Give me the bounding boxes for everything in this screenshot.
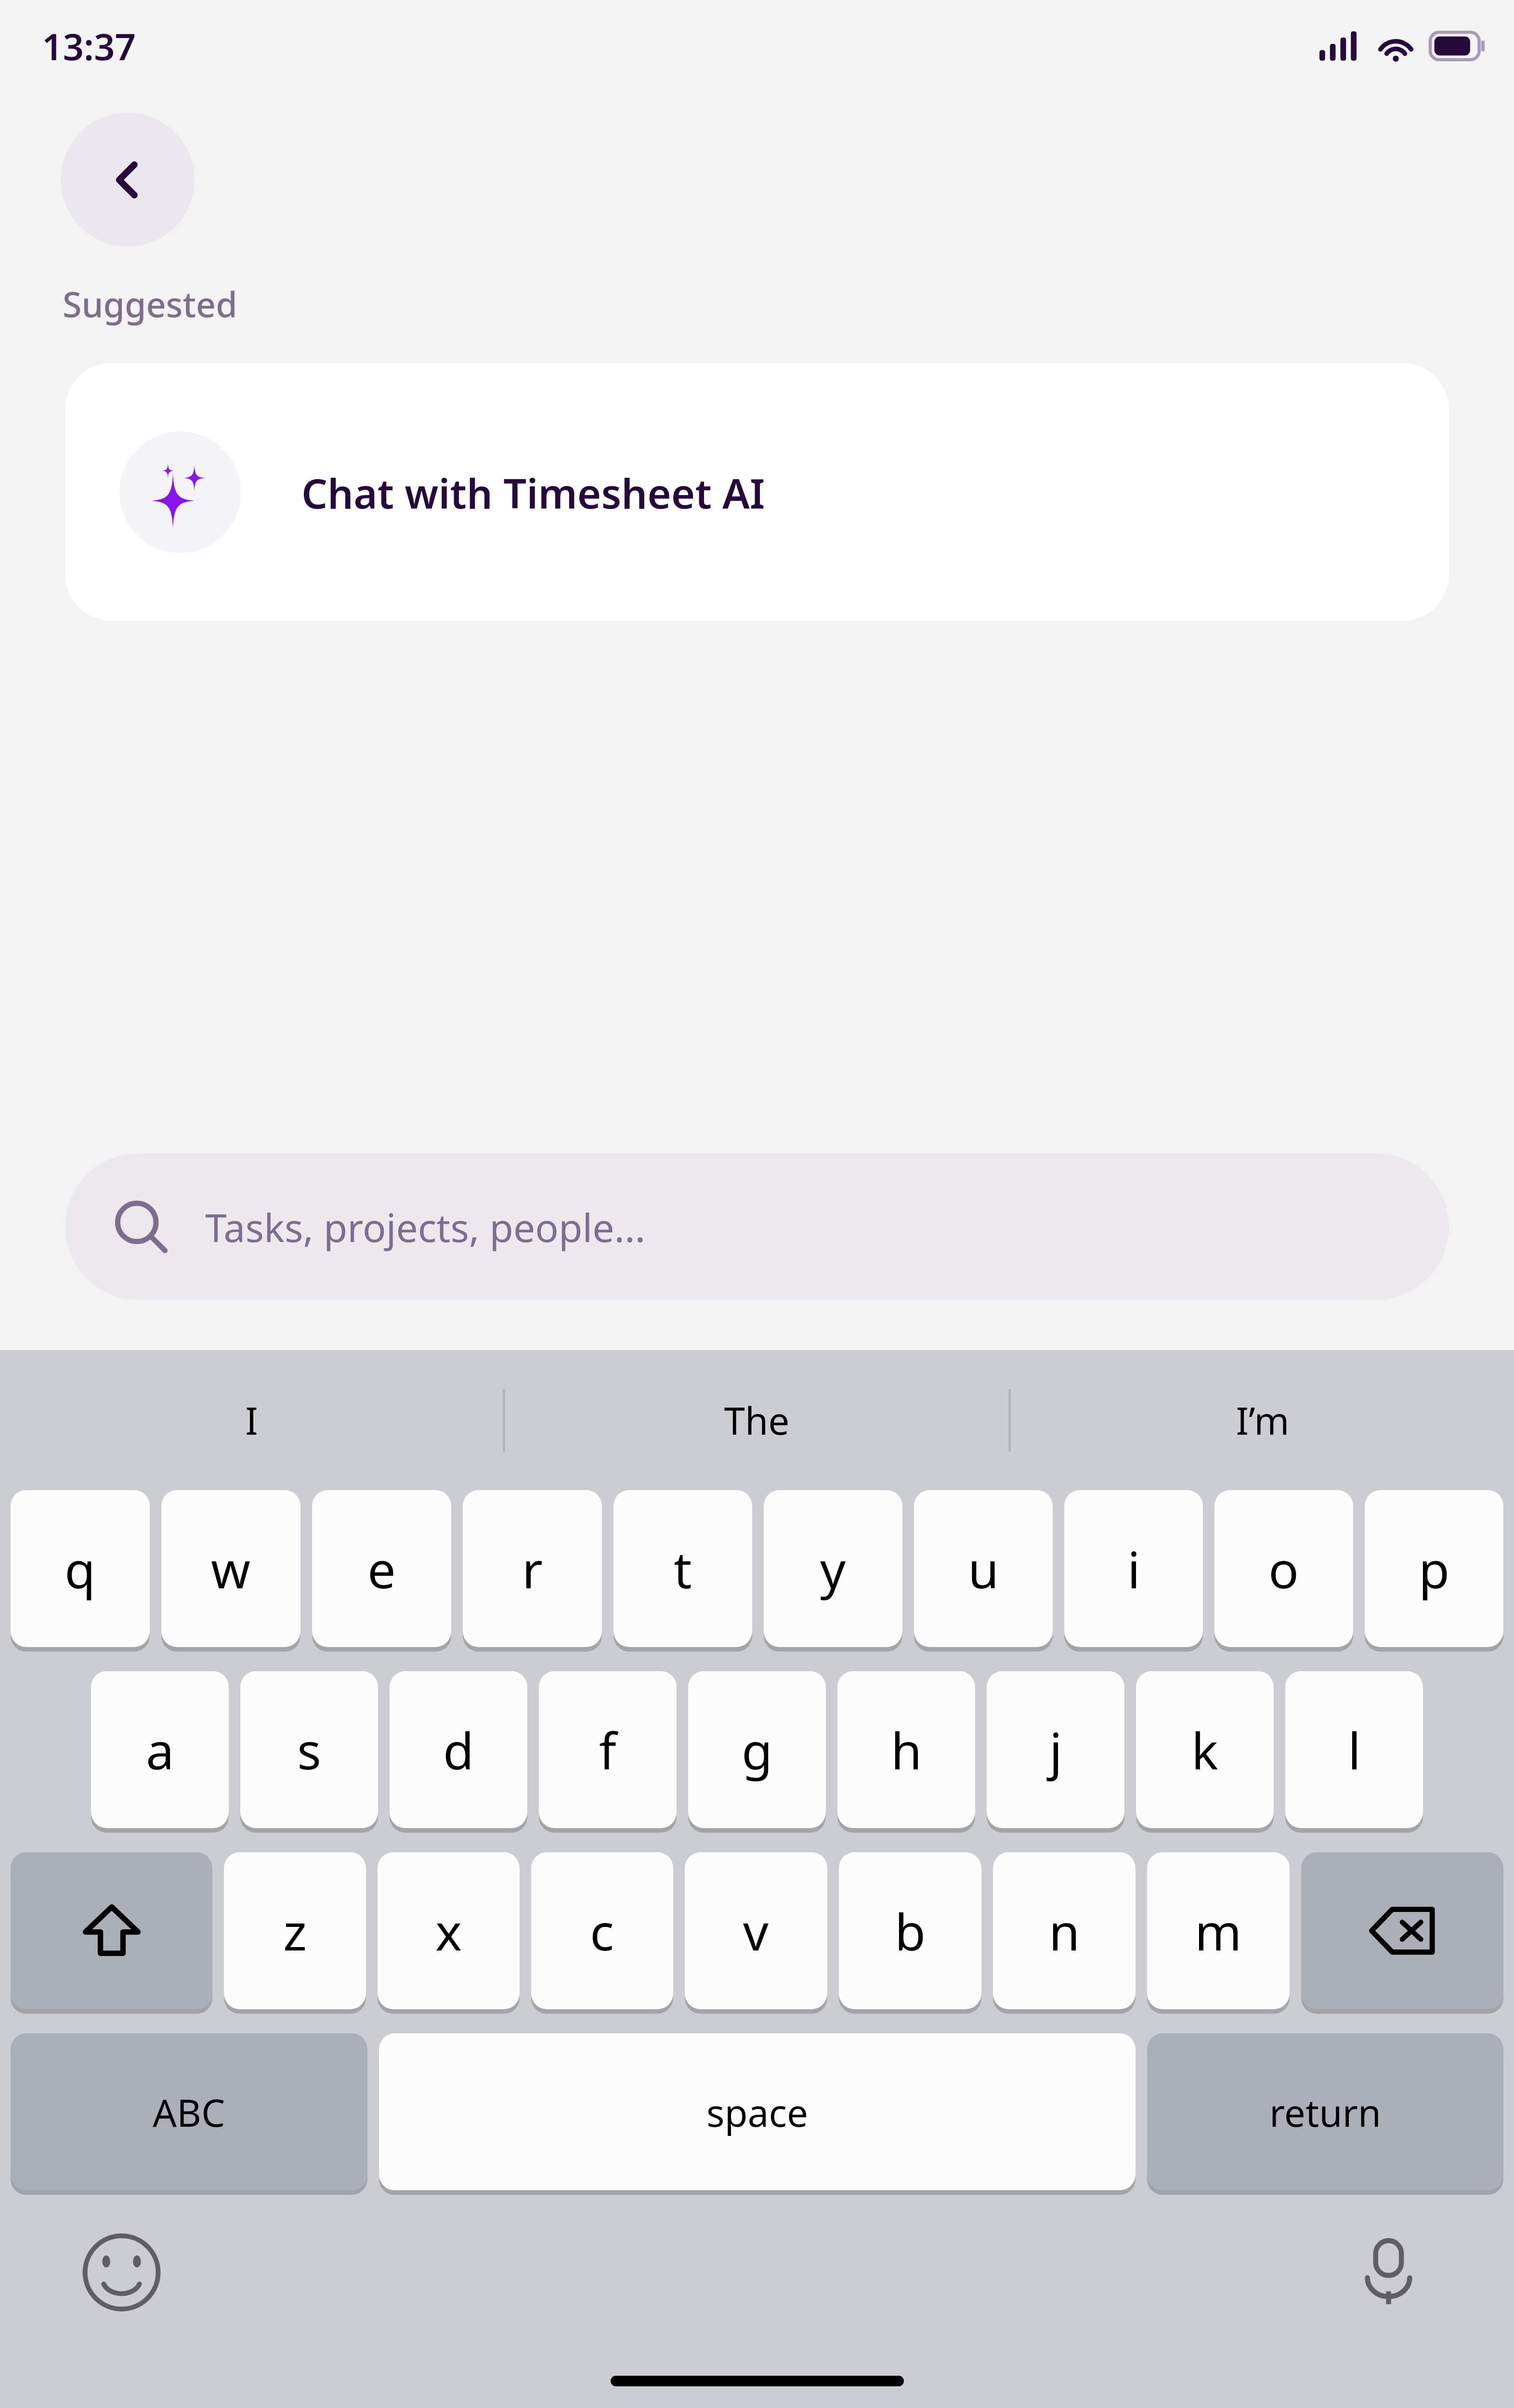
staticText: z (283, 1897, 307, 1965)
button[interactable]: Dictate (1346, 2230, 1430, 2314)
staticText: m (1195, 1897, 1242, 1965)
button[interactable]: f (539, 1671, 677, 1828)
staticText: Chat with Timesheet AI (301, 465, 765, 520)
staticText: space (706, 2086, 809, 2138)
staticText: Suggested (63, 280, 237, 327)
button[interactable]: j (987, 1671, 1124, 1828)
staticText: g (742, 1715, 773, 1784)
button[interactable]: I’m (1011, 1350, 1514, 1490)
staticText: o (1268, 1534, 1299, 1603)
staticText: f (599, 1715, 616, 1784)
staticText: I (245, 1394, 258, 1446)
button[interactable]: v (685, 1852, 827, 2009)
staticText: s (297, 1715, 321, 1784)
staticText: ABC (153, 2086, 225, 2138)
button[interactable]: s (240, 1671, 378, 1828)
button[interactable]: r (463, 1490, 602, 1647)
staticText: v (743, 1897, 769, 1965)
button[interactable]: i (1064, 1490, 1203, 1647)
button[interactable]: b (839, 1852, 981, 2009)
staticText: I’m (1236, 1394, 1290, 1446)
staticText: i (1127, 1534, 1140, 1603)
button[interactable]: o (1214, 1490, 1353, 1647)
button[interactable]: z (224, 1852, 366, 2009)
staticText: t (674, 1534, 692, 1603)
button[interactable]: e (312, 1490, 451, 1647)
staticText: k (1191, 1715, 1218, 1784)
button[interactable]: Backspace (1301, 1852, 1503, 2009)
staticText: j (1049, 1715, 1062, 1784)
button[interactable]: g (688, 1671, 826, 1828)
button[interactable]: Tasks, projects, people... (65, 1153, 1449, 1300)
button[interactable]: return (1147, 2033, 1503, 2190)
staticText: y (820, 1534, 846, 1603)
staticText: r (522, 1534, 543, 1603)
button[interactable]: q (11, 1490, 150, 1647)
button[interactable]: The (505, 1350, 1008, 1490)
staticText: q (65, 1534, 96, 1603)
button[interactable]: k (1136, 1671, 1274, 1828)
button[interactable]: x (378, 1852, 520, 2009)
staticText: d (443, 1715, 474, 1784)
staticText: return (1269, 2086, 1382, 2138)
button[interactable]: Chat with Timesheet AI (65, 363, 1449, 621)
staticText: Tasks, projects, people... (205, 1201, 646, 1254)
button[interactable]: I (0, 1350, 503, 1490)
button[interactable]: ABC (11, 2033, 367, 2190)
button[interactable]: space (379, 2033, 1135, 2190)
staticText: l (1348, 1715, 1361, 1784)
button[interactable]: c (531, 1852, 673, 2009)
staticText: u (968, 1534, 999, 1603)
button[interactable]: a (91, 1671, 229, 1828)
staticText: a (146, 1715, 174, 1784)
staticText: w (211, 1534, 251, 1603)
button[interactable]: Shift (11, 1852, 212, 2009)
button[interactable]: w (161, 1490, 300, 1647)
staticText: e (367, 1534, 396, 1603)
button[interactable]: l (1285, 1671, 1423, 1828)
button[interactable]: d (390, 1671, 527, 1828)
staticText: The (724, 1394, 790, 1446)
button[interactable]: t (613, 1490, 752, 1647)
staticText: b (895, 1897, 926, 1965)
button[interactable]: u (914, 1490, 1053, 1647)
button[interactable]: h (837, 1671, 975, 1828)
staticText: c (590, 1897, 614, 1965)
button[interactable]: Back (61, 113, 195, 247)
button[interactable]: m (1147, 1852, 1290, 2009)
button[interactable]: p (1365, 1490, 1503, 1647)
button[interactable]: y (764, 1490, 902, 1647)
staticText: p (1419, 1534, 1450, 1603)
button[interactable]: Emoji (79, 2230, 163, 2314)
button[interactable]: n (993, 1852, 1135, 2009)
staticText: 13:37 (42, 21, 136, 71)
staticText: h (891, 1715, 922, 1784)
staticText: x (435, 1897, 462, 1965)
staticText: n (1049, 1897, 1080, 1965)
